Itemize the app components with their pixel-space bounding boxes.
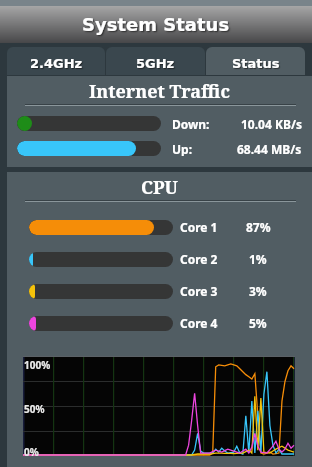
staticText: Core 4 <box>180 315 218 331</box>
staticText: 5% <box>249 315 267 331</box>
staticText: 87% <box>246 219 271 235</box>
staticText: Down: <box>172 116 210 131</box>
staticText: Status <box>232 56 280 71</box>
staticText: Core 1 <box>180 219 218 235</box>
staticText: 3% <box>249 283 267 299</box>
staticText: Internet Traffic <box>89 79 230 104</box>
staticText: 10.04 KB/s <box>241 116 302 131</box>
button[interactable]: 5GHz <box>106 47 205 75</box>
staticText: 50% <box>24 402 45 416</box>
staticText: 2.4GHz <box>30 56 83 71</box>
button[interactable]: Core 1 <box>7 211 312 243</box>
staticText: 5GHz <box>136 56 175 71</box>
staticText: 0% <box>24 445 39 459</box>
button[interactable]: Status <box>206 47 305 75</box>
button[interactable]: Core 4 <box>7 307 312 339</box>
staticText: Up: <box>172 141 193 156</box>
staticText: 1% <box>249 251 267 267</box>
button[interactable]: Down: <box>7 116 312 131</box>
button[interactable]: Up: <box>7 141 312 156</box>
staticText: CPU <box>141 175 178 200</box>
staticText: System Status <box>82 14 230 35</box>
staticText: 68.44 MB/s <box>237 141 302 156</box>
staticText: Core 2 <box>180 251 218 267</box>
staticText: Core 3 <box>180 283 218 299</box>
staticText: 100% <box>24 358 51 372</box>
button[interactable]: Core 3 <box>7 275 312 307</box>
button[interactable]: 2.4GHz <box>7 47 105 75</box>
button[interactable]: Core 2 <box>7 243 312 275</box>
